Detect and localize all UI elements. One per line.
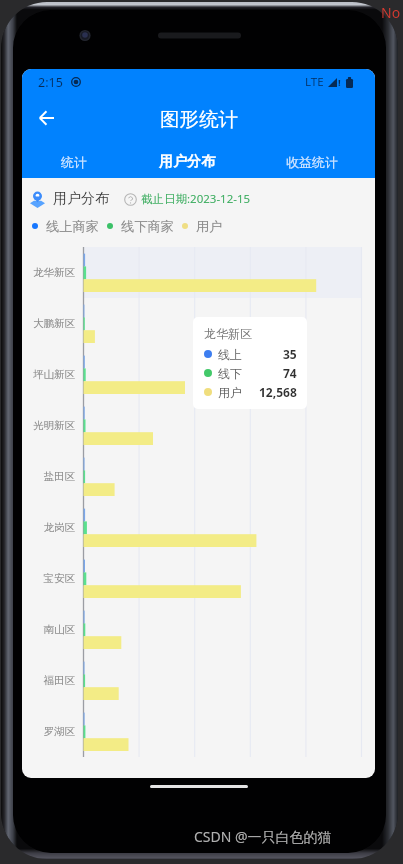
button[interactable]: Back (27, 101, 65, 139)
staticText: 线下 (218, 366, 242, 381)
staticText: 龙华新区 (204, 326, 252, 341)
staticText: 用户分布 (159, 153, 215, 171)
staticText: LTE (305, 74, 324, 90)
staticText: 用户分布 (53, 190, 109, 208)
staticText: 35 (283, 346, 297, 362)
staticText: 用户 (196, 218, 223, 233)
staticText: 图形统计 (160, 107, 238, 132)
staticText: 线下商家 (121, 218, 174, 233)
staticText: 截止日期:2023-12-15 (141, 191, 251, 207)
staticText: 线上商家 (46, 218, 99, 233)
staticText: 南山区 (22, 623, 75, 636)
staticText: 12,568 (259, 384, 297, 400)
staticText: No m (381, 3, 403, 22)
staticText: CSDN @一只白色的猫 (194, 827, 332, 846)
staticText: 大鹏新区 (22, 317, 75, 330)
staticText: 龙华新区 (22, 266, 75, 279)
staticText: 盐田区 (22, 470, 75, 483)
staticText: 线上 (218, 347, 242, 362)
button[interactable]: 统计 (22, 145, 125, 178)
staticText: 宝安区 (22, 572, 75, 585)
staticText: 2:15 (38, 74, 63, 91)
staticText: ! (338, 76, 341, 89)
staticText: 74 (283, 365, 297, 381)
staticText: 龙岗区 (22, 521, 75, 534)
staticText: 福田区 (22, 674, 75, 687)
staticText: 罗湖区 (22, 725, 75, 738)
staticText: 统计 (61, 154, 87, 170)
button[interactable]: 用户分布 (125, 145, 248, 178)
staticText: 光明新区 (22, 419, 75, 432)
staticText: 坪山新区 (22, 368, 75, 381)
button[interactable]: 收益统计 (248, 145, 375, 178)
staticText: 用户 (218, 385, 242, 400)
staticText: 收益统计 (286, 154, 338, 170)
